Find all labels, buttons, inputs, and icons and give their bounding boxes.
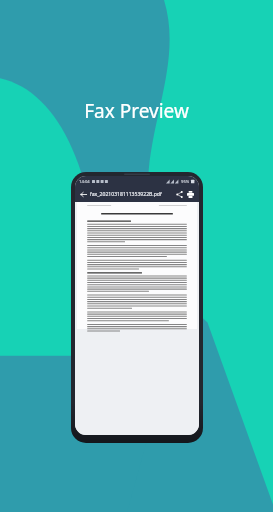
- button[interactable]: Print: [185, 189, 196, 200]
- staticText: fax_20210318111353922B.pdf: [90, 191, 162, 198]
- button[interactable]: Back: [78, 189, 89, 200]
- staticText: 95%: [181, 179, 190, 185]
- staticText: Fax Preview: [84, 98, 189, 124]
- button[interactable]: Share: [174, 189, 185, 200]
- staticText: 14:04: [79, 179, 90, 185]
